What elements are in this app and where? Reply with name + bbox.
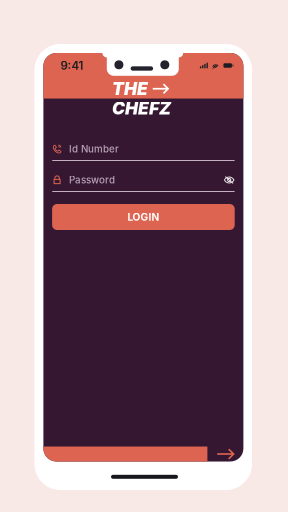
staticText: CHEFZ [112,98,171,119]
staticText: 9:41 [60,59,83,72]
staticText: LOGIN [127,211,159,223]
staticText: THE [112,78,148,99]
staticText: Id Number [69,143,119,155]
button[interactable]: Continue [207,446,243,461]
button[interactable]: LOGIN [52,204,235,230]
staticText: Password [69,174,115,186]
